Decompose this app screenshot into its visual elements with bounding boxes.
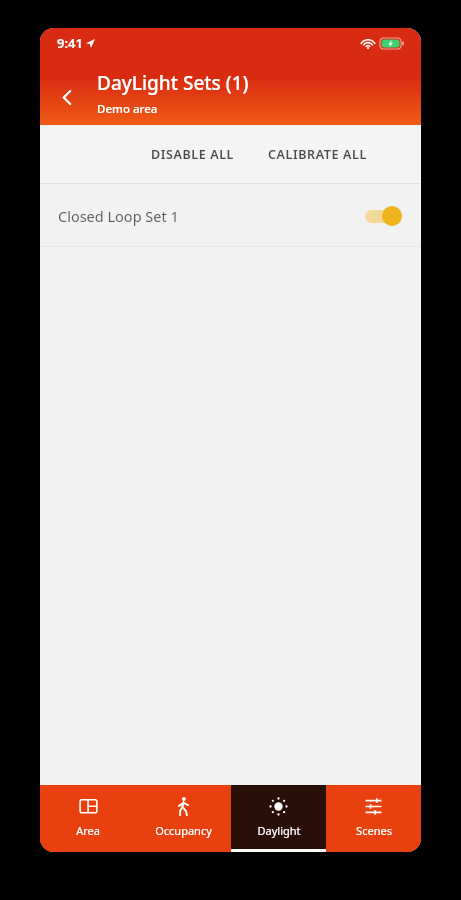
staticText: Area: [76, 823, 100, 838]
staticText: DISABLE ALL: [151, 146, 234, 163]
staticText: Occupancy: [155, 823, 212, 838]
staticText: Daylight: [257, 823, 301, 838]
staticText: Scenes: [356, 823, 392, 838]
button[interactable]: Daylight: [231, 785, 326, 852]
button[interactable]: Closed Loop Set 1: [40, 184, 421, 247]
button[interactable]: Back: [46, 76, 88, 118]
staticText: Closed Loop Set 1: [58, 206, 179, 226]
staticText: DayLight Sets (1): [97, 70, 249, 96]
staticText: Demo area: [97, 101, 158, 117]
button[interactable]: Toggle Closed Loop Set 1: [363, 205, 403, 227]
button[interactable]: Area: [40, 785, 136, 852]
button[interactable]: Scenes: [326, 785, 421, 852]
button[interactable]: Occupancy: [136, 785, 231, 852]
staticText: 9:41: [57, 34, 83, 52]
staticText: CALIBRATE ALL: [268, 146, 367, 163]
button[interactable]: CALIBRATE ALL: [262, 138, 373, 171]
button[interactable]: DISABLE ALL: [145, 138, 240, 171]
